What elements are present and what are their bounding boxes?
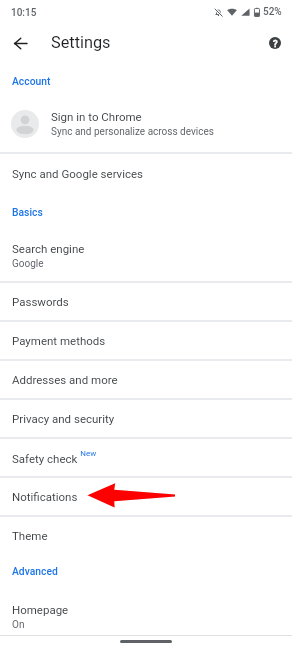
staticText: Notifications <box>12 490 78 503</box>
staticText: Homepage <box>12 603 69 616</box>
staticText: Search engine <box>12 242 85 255</box>
button[interactable]: Homepage <box>0 594 292 643</box>
staticText: Settings <box>51 33 111 52</box>
button[interactable]: Notifications <box>0 478 292 517</box>
staticText: Basics <box>12 206 43 218</box>
staticText: Sync and Google services <box>12 167 144 180</box>
button[interactable]: Privacy and security <box>0 400 292 439</box>
button[interactable]: Passwords <box>0 283 292 322</box>
button[interactable]: Payment methods <box>0 322 292 361</box>
staticText: Privacy and security <box>12 412 115 425</box>
button[interactable]: Sync and Google services <box>0 154 292 193</box>
staticText: 52% <box>263 6 282 18</box>
staticText: Sign in to Chrome <box>51 110 142 123</box>
staticText: Google <box>12 258 44 270</box>
staticText: Sync and personalize across devices <box>51 126 214 138</box>
button[interactable]: Back <box>4 27 36 59</box>
button[interactable]: Addresses and more <box>0 361 292 400</box>
staticText: 10:15 <box>11 7 37 19</box>
staticText: Safety check New <box>12 449 97 466</box>
staticText: Advanced <box>12 565 58 577</box>
staticText: Addresses and more <box>12 373 118 386</box>
button[interactable]: Sign in to Chrome <box>0 95 292 154</box>
staticText: On <box>12 619 25 631</box>
button[interactable]: Theme <box>0 517 292 554</box>
staticText: Theme <box>12 529 48 542</box>
staticText: Payment methods <box>12 334 106 347</box>
staticText: Passwords <box>12 295 69 308</box>
button[interactable]: Search engine <box>0 233 292 283</box>
button[interactable]: Help and feedback <box>261 29 289 57</box>
staticText: Account <box>12 75 51 87</box>
staticText: ? <box>273 38 278 49</box>
button[interactable]: Safety check New <box>0 439 292 478</box>
